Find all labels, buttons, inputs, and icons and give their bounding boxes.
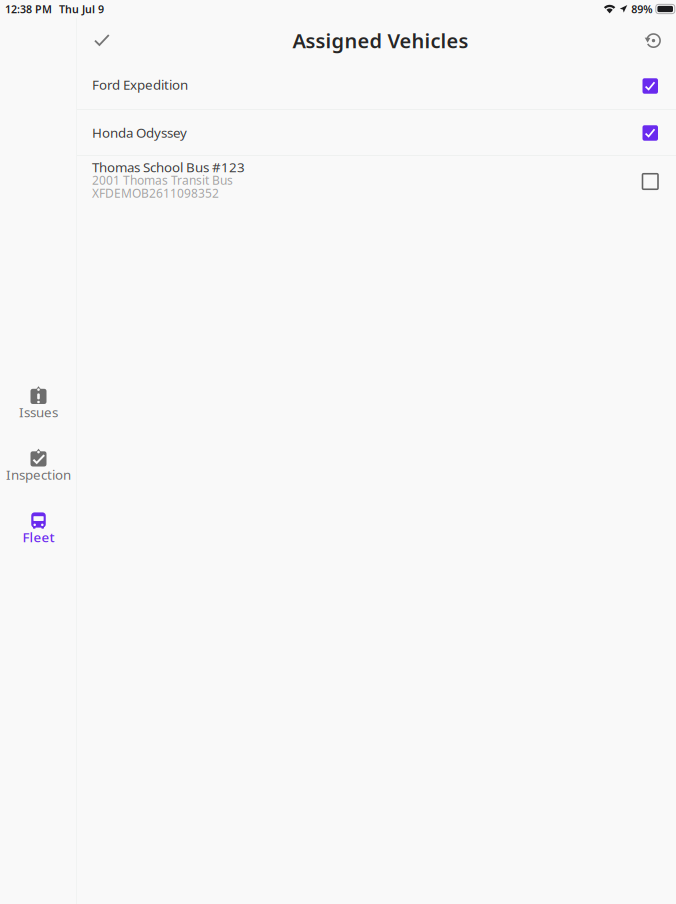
- staticText: Honda Odyssey: [92, 124, 187, 141]
- staticText: 89%: [631, 2, 652, 16]
- staticText: 2001 Thomas Transit Bus: [92, 172, 233, 188]
- staticText: XFDEMOB2611098352: [92, 185, 219, 201]
- button[interactable]: Fleet: [0, 511, 77, 544]
- button[interactable]: Honda Odyssey: [77, 110, 676, 155]
- staticText: Thu Jul 9: [59, 2, 104, 16]
- staticText: Issues: [19, 403, 58, 421]
- staticText: 12:38 PM: [5, 2, 52, 16]
- button[interactable]: Ford Expedition: [77, 60, 676, 109]
- button[interactable]: Thomas School Bus #123: [77, 156, 676, 207]
- button[interactable]: Done: [81, 18, 123, 60]
- staticText: Inspection: [6, 466, 71, 483]
- button[interactable]: History: [632, 18, 674, 60]
- staticText: Ford Expedition: [92, 76, 188, 93]
- staticText: Fleet: [22, 528, 54, 546]
- button[interactable]: Issues: [0, 386, 77, 419]
- button[interactable]: Inspection: [0, 448, 77, 481]
- staticText: Assigned Vehicles: [292, 27, 468, 54]
- staticText: Thomas School Bus #123: [92, 158, 245, 176]
